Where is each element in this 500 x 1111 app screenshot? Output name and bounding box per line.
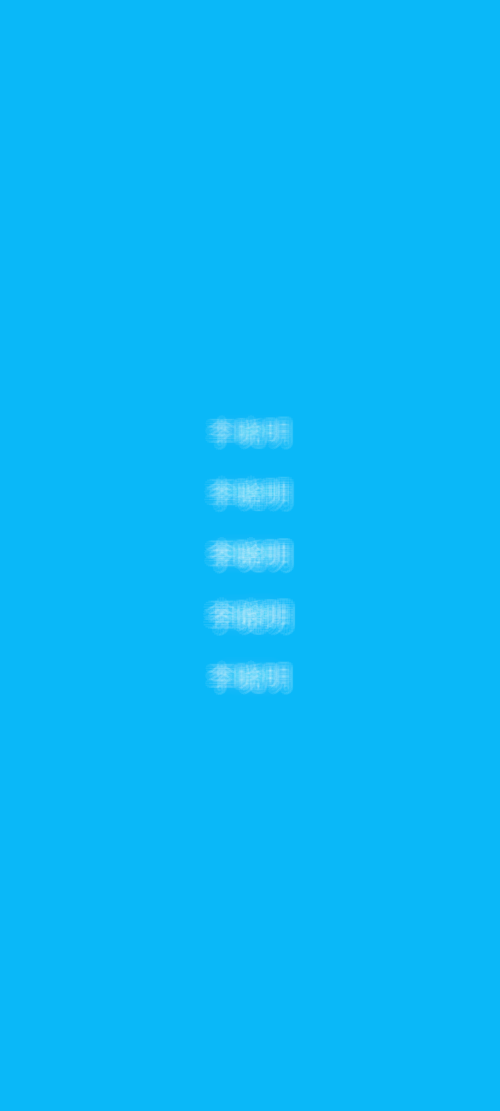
staticText: 李晓明 (207, 543, 291, 578)
staticText: 李晓明 (212, 660, 296, 696)
staticText: 李晓明 (211, 417, 295, 453)
staticText: 李晓明 (208, 477, 292, 512)
staticText: 李晓明 (203, 602, 287, 637)
staticText: 李晓明 (208, 599, 292, 634)
staticText: 李晓明 (213, 477, 297, 512)
staticText: 李晓明 (212, 604, 296, 639)
staticText: 李晓明 (204, 594, 288, 630)
staticText: 李晓明 (208, 482, 292, 517)
staticText: 李晓明 (211, 534, 295, 569)
staticText: 李晓明 (204, 479, 288, 514)
staticText: 李晓明 (209, 593, 293, 629)
staticText: 李晓明 (203, 538, 287, 573)
staticText: 李晓明 (207, 533, 291, 568)
staticText: 李晓明 (212, 536, 296, 571)
staticText: 李晓明 (210, 472, 294, 508)
staticText: 李晓明 (207, 593, 291, 629)
staticText: 李晓明 (203, 596, 287, 632)
staticText: 李晓明 (206, 412, 290, 447)
staticText: 李晓明 (213, 596, 297, 632)
staticText: 李晓明 (208, 538, 292, 573)
staticText: 李晓明 (203, 540, 287, 575)
staticText: 李晓明 (203, 536, 287, 571)
staticText: 李晓明 (212, 594, 296, 630)
staticText: 李晓明 (210, 419, 294, 454)
staticText: 李晓明 (212, 540, 296, 575)
staticText: 李晓明 (203, 477, 287, 512)
staticText: 李晓明 (204, 658, 288, 694)
staticText: 李晓明 (210, 664, 294, 699)
staticText: 李晓明 (212, 415, 296, 451)
staticText: 李晓明 (206, 664, 290, 699)
staticText: 李晓明 (205, 472, 289, 508)
staticText: 李晓明 (206, 657, 290, 692)
staticText: 李晓明 (204, 417, 288, 453)
staticText: 李晓明 (209, 543, 293, 578)
staticText: 李晓明 (209, 605, 293, 640)
staticText: 李晓明 (210, 481, 294, 516)
staticText: 李晓明 (204, 604, 288, 639)
staticText: 李晓明 (204, 660, 288, 696)
staticText: 李晓明 (208, 664, 292, 700)
staticText: 李晓明 (213, 538, 297, 573)
staticText: 李晓明 (213, 602, 297, 637)
staticText: 李晓明 (210, 412, 294, 447)
staticText: 李晓明 (205, 481, 289, 516)
staticText: 李晓明 (205, 534, 289, 569)
staticText: 李晓明 (211, 658, 295, 694)
staticText: 李晓明 (208, 415, 292, 451)
staticText: 李晓明 (211, 662, 295, 698)
staticText: 李晓明 (204, 415, 288, 451)
staticText: 李晓明 (207, 605, 291, 640)
staticText: 李晓明 (212, 479, 296, 514)
staticText: 李晓明 (208, 411, 292, 447)
staticText: 李晓明 (210, 657, 294, 692)
staticText: 李晓明 (209, 533, 293, 568)
staticText: 李晓明 (204, 413, 288, 449)
staticText: 李晓明 (212, 474, 296, 509)
staticText: 李晓明 (206, 419, 290, 454)
staticText: 李晓明 (211, 542, 295, 577)
staticText: 李晓明 (204, 662, 288, 698)
staticText: 李晓明 (208, 419, 292, 455)
staticText: 李晓明 (211, 413, 295, 449)
staticText: 李晓明 (208, 660, 292, 696)
staticText: 李晓明 (208, 472, 292, 507)
staticText: 李晓明 (214, 599, 298, 634)
staticText: 李晓明 (204, 474, 288, 509)
staticText: 李晓明 (205, 542, 289, 577)
staticText: 李晓明 (202, 599, 286, 634)
staticText: 李晓明 (208, 656, 292, 692)
